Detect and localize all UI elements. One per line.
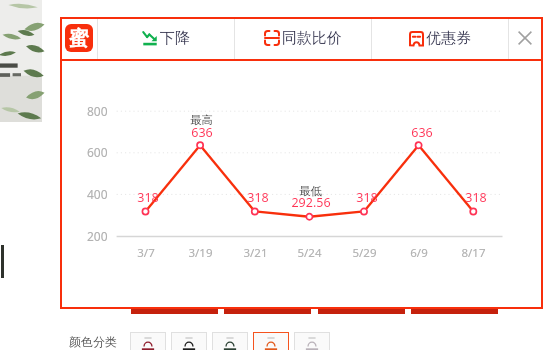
staticText: 6/9 <box>410 245 428 261</box>
button[interactable]: 同款比价 <box>235 17 371 59</box>
staticText: 优惠券 <box>426 29 471 48</box>
button[interactable]: Bottom tab 4 <box>411 307 498 314</box>
staticText: 蜜 <box>69 26 89 51</box>
staticText: 3/7 <box>137 245 155 261</box>
staticText: 200 <box>87 228 108 244</box>
staticText: 5/24 <box>297 245 322 261</box>
staticText: 最高 <box>190 113 213 127</box>
staticText: 5/29 <box>352 245 377 261</box>
button[interactable]: Close <box>509 17 540 59</box>
button[interactable]: 优惠券 <box>372 17 508 59</box>
staticText: 636 <box>191 124 213 141</box>
staticText: 318 <box>356 189 378 206</box>
button[interactable]: Colour option 3 <box>212 332 248 350</box>
staticText: 8/17 <box>461 245 486 261</box>
button[interactable]: Bottom tab 1 <box>131 307 218 314</box>
staticText: 3/21 <box>243 245 268 261</box>
button[interactable]: Colour option 1 <box>130 332 166 350</box>
staticText: 最低 <box>299 184 322 198</box>
staticText: 下降 <box>160 29 190 48</box>
staticText: 318 <box>247 189 269 206</box>
button[interactable]: Bottom tab 3 <box>318 307 405 314</box>
staticText: 3/19 <box>188 245 213 261</box>
staticText: 318 <box>137 189 159 206</box>
button[interactable]: Colour option 4 <box>253 332 289 350</box>
button[interactable]: Colour option 2 <box>171 332 207 350</box>
staticText: 292.56 <box>291 194 331 211</box>
staticText: 636 <box>411 124 433 141</box>
staticText: 600 <box>87 144 108 160</box>
staticText: 400 <box>87 186 108 202</box>
staticText: 318 <box>465 189 487 206</box>
staticText: 同款比价 <box>282 29 342 48</box>
staticText: 颜色分类 <box>69 334 117 349</box>
button[interactable]: Colour option 5 <box>294 332 330 350</box>
staticText: 800 <box>87 103 108 119</box>
button[interactable]: App logo <box>60 17 97 59</box>
button[interactable]: 下降 <box>98 17 234 59</box>
button[interactable]: Bottom tab 2 <box>224 307 311 314</box>
